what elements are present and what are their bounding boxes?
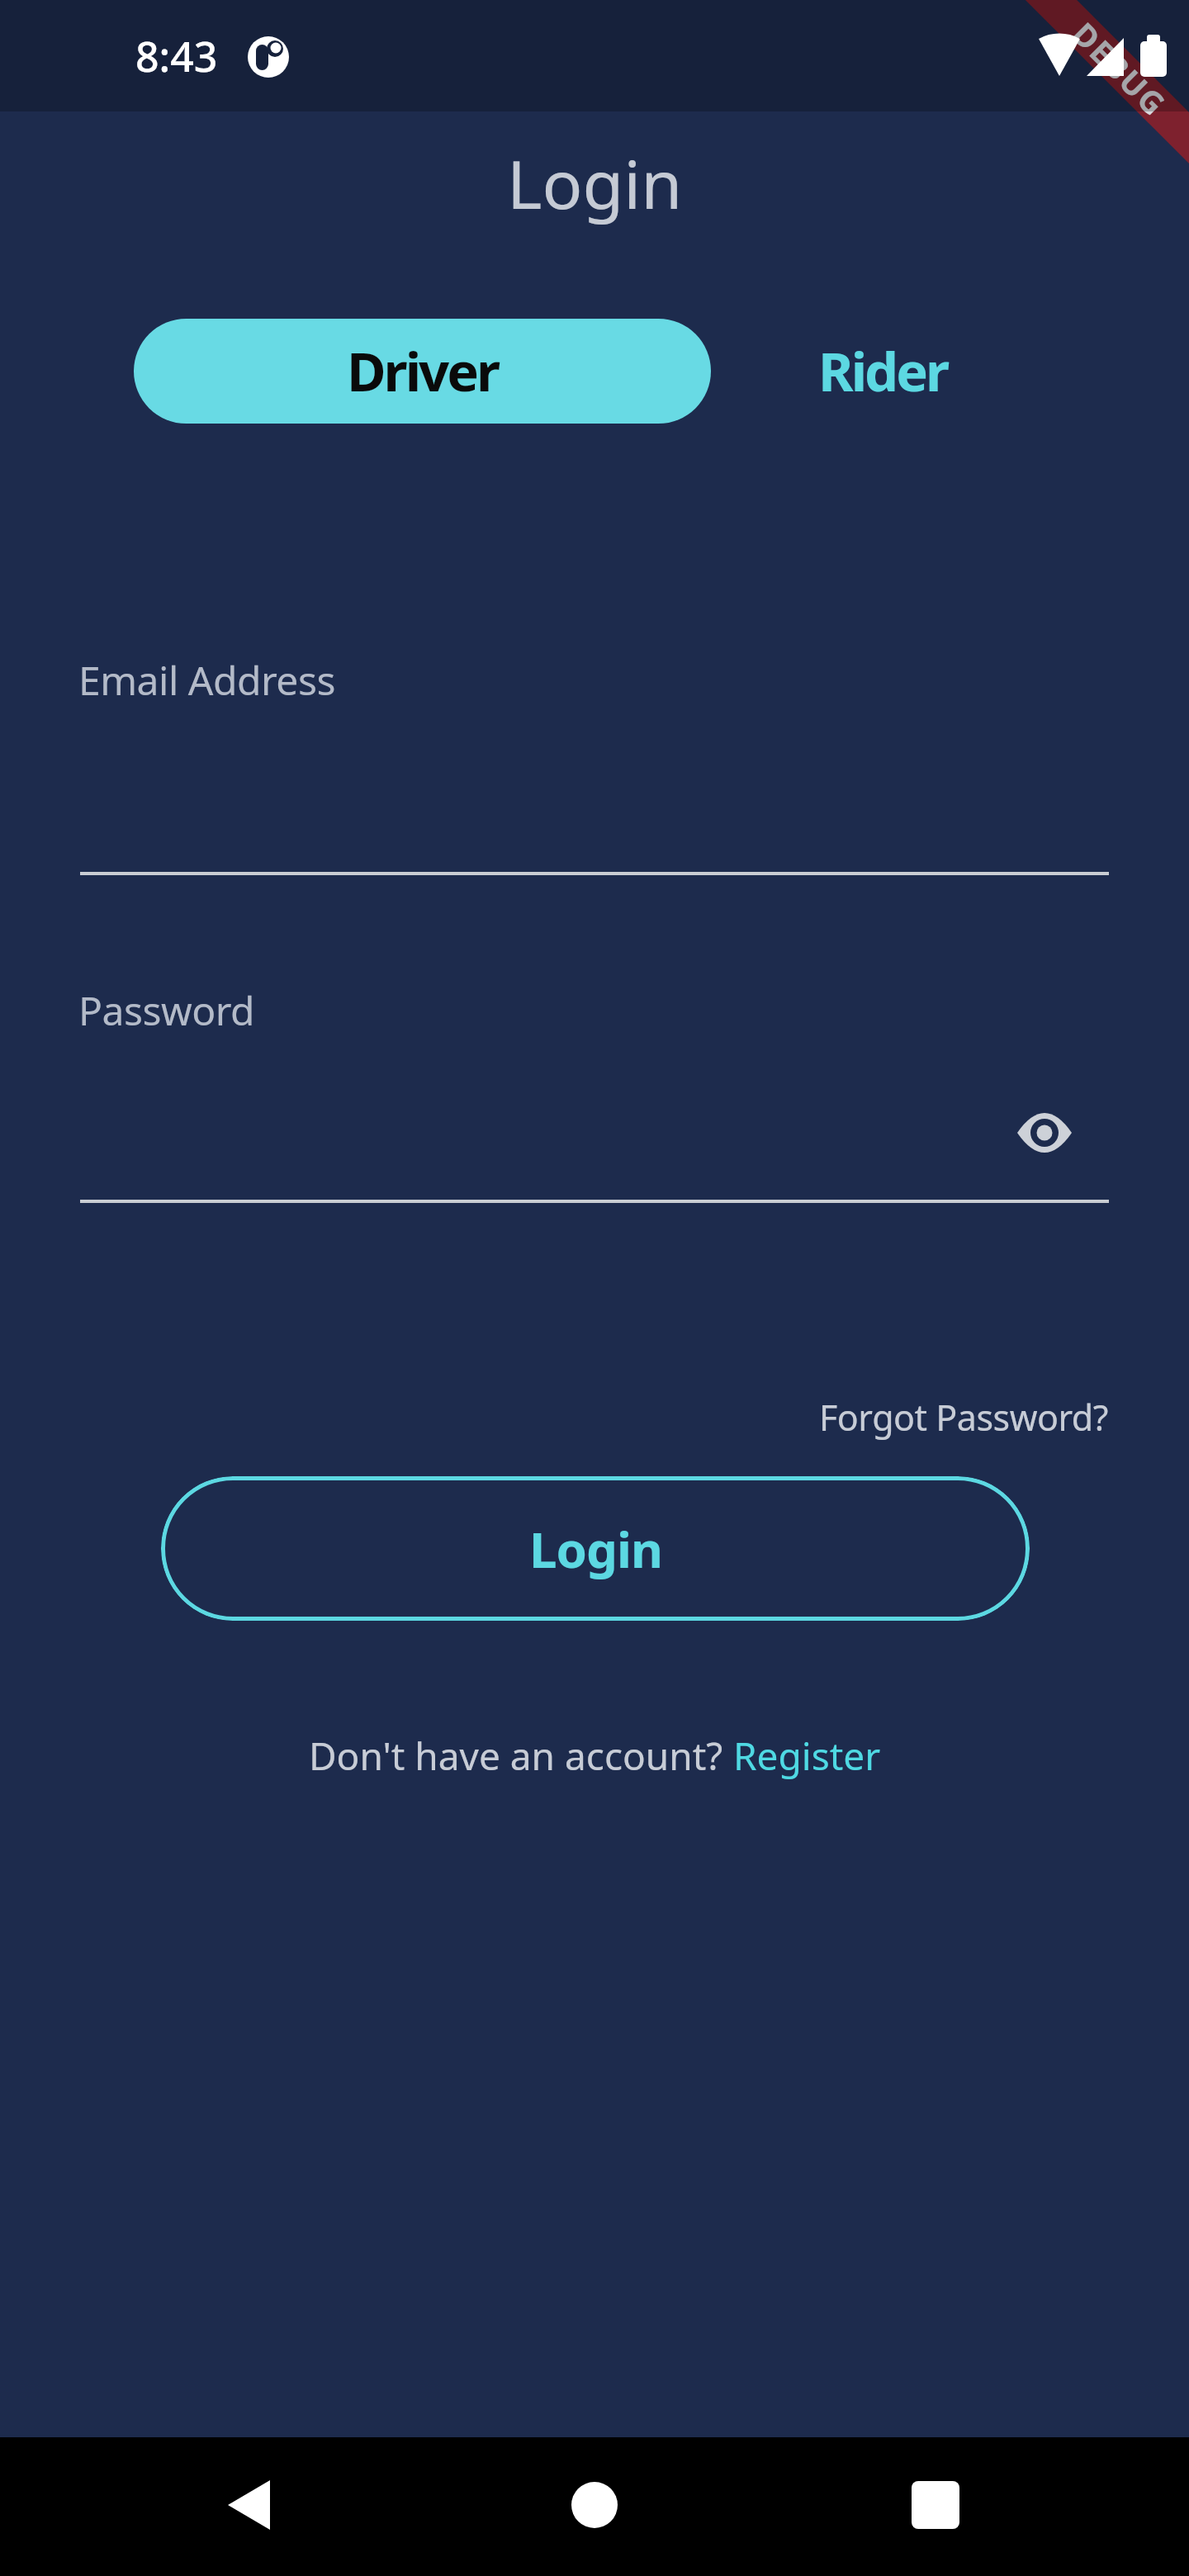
staticText: Rider (818, 334, 948, 408)
button[interactable] (886, 2455, 985, 2555)
staticText: Don't have an account? (309, 1730, 733, 1779)
button[interactable]: Register (733, 1730, 881, 1779)
staticText: Email Address (78, 653, 335, 703)
button[interactable]: Login (161, 1476, 1030, 1621)
staticText: Password (78, 983, 255, 1033)
staticText: 8:43 (135, 28, 218, 78)
button[interactable] (200, 2455, 299, 2555)
staticText: Login (529, 1515, 662, 1583)
button[interactable] (1003, 1091, 1086, 1174)
button[interactable] (545, 2455, 644, 2555)
staticText: DEBUG (1064, 12, 1176, 125)
button[interactable]: Driver (134, 319, 711, 424)
button[interactable]: Rider (711, 319, 1055, 424)
button[interactable]: Forgot Password? (819, 1393, 1108, 1442)
staticText: Driver (347, 334, 499, 408)
staticText: Login (507, 137, 683, 228)
